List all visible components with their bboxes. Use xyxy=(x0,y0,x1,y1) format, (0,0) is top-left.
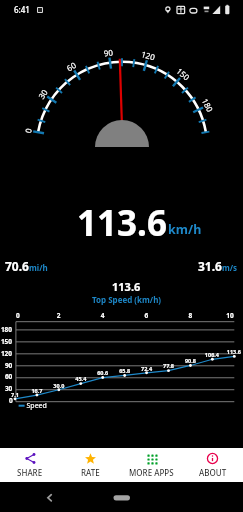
button[interactable]: MORE APPS xyxy=(121,448,182,482)
button[interactable]: RATE xyxy=(60,448,121,482)
staticText: 113.6 xyxy=(77,199,167,247)
staticText: Top Speed (km/h) xyxy=(92,294,162,305)
staticText: 31.6 xyxy=(198,258,222,274)
staticText: km/h xyxy=(168,221,202,238)
button[interactable]: SHARE xyxy=(0,448,60,482)
staticText: 6:41 xyxy=(14,4,30,15)
staticText: 113.6 xyxy=(112,279,141,294)
button[interactable]: ABOUT xyxy=(182,448,243,482)
staticText: ABOUT xyxy=(199,467,227,478)
staticText: 70.6 xyxy=(5,258,29,274)
staticText: mi/h xyxy=(29,262,48,273)
staticText: RATE xyxy=(81,467,100,478)
staticText: m/s xyxy=(222,262,238,273)
staticText: SHARE xyxy=(17,467,43,478)
staticText: MORE APPS xyxy=(129,467,174,478)
